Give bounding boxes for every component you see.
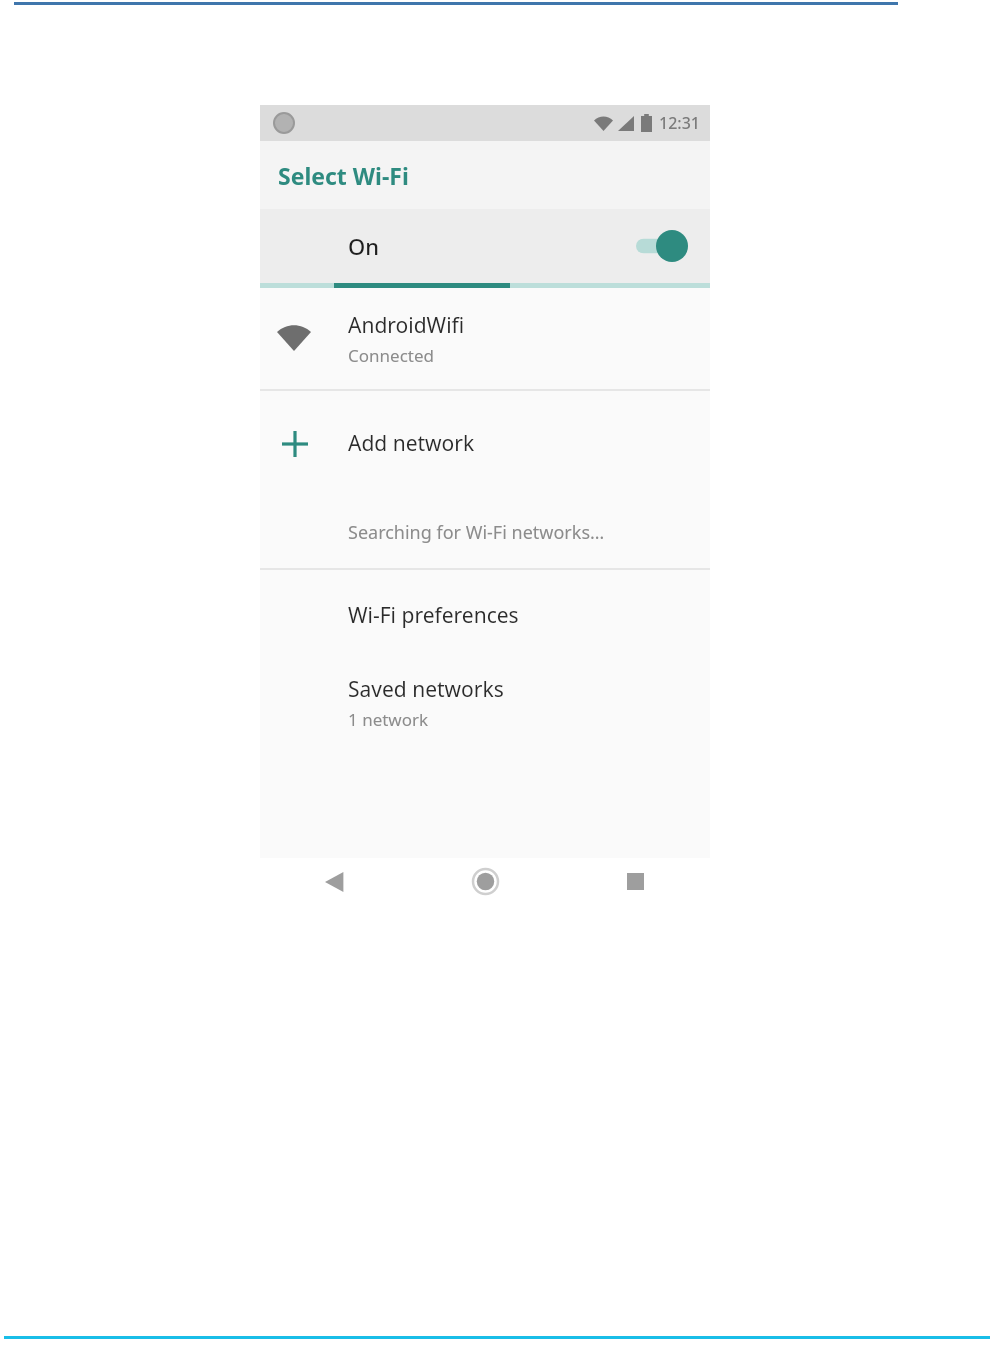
- staticText: Searching for Wi-Fi networks…: [348, 520, 605, 545]
- button[interactable]: Back: [260, 858, 410, 905]
- staticText: Connected: [348, 344, 434, 367]
- button[interactable]: Wi-Fi preferences: [260, 570, 710, 660]
- staticText: 12:31: [659, 112, 700, 134]
- button[interactable]: AndroidWifi: [260, 288, 710, 389]
- staticText: Select Wi-Fi: [278, 160, 409, 191]
- staticText: Saved networks: [348, 675, 504, 704]
- button[interactable]: Add network: [260, 391, 710, 496]
- button[interactable]: Toggle Wi-Fi: [636, 230, 688, 262]
- staticText: Wi-Fi preferences: [348, 601, 519, 630]
- button[interactable]: Saved networks: [260, 660, 710, 746]
- button[interactable]: Home: [410, 858, 560, 905]
- staticText: On: [348, 231, 380, 261]
- staticText: AndroidWifi: [348, 311, 465, 340]
- staticText: Add network: [348, 429, 475, 458]
- button[interactable]: On: [260, 209, 710, 283]
- button[interactable]: Recents: [560, 858, 710, 905]
- staticText: 1 network: [348, 708, 429, 731]
